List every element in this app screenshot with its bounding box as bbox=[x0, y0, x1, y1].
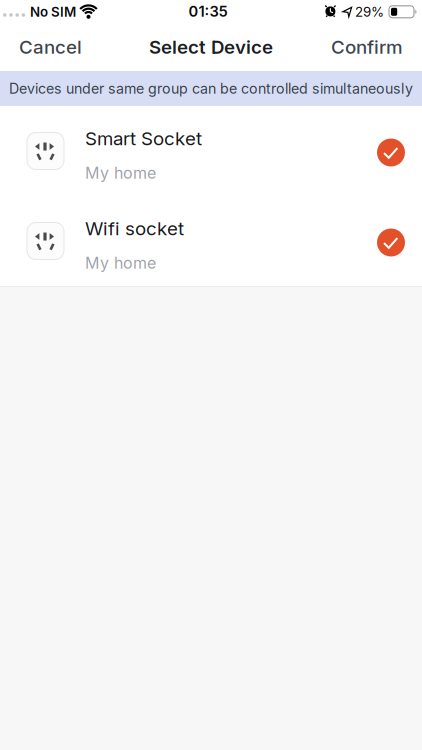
staticText: Select Device bbox=[149, 36, 273, 58]
staticText: Confirm bbox=[331, 36, 403, 58]
staticText: 29% bbox=[355, 4, 384, 20]
button[interactable]: Smart Socket bbox=[0, 106, 422, 196]
button[interactable]: Confirm bbox=[331, 36, 403, 58]
button[interactable]: Wifi socket bbox=[0, 196, 422, 286]
staticText: Wifi socket bbox=[85, 218, 184, 240]
staticText: Devices under same group can be controll… bbox=[9, 80, 413, 97]
staticText: 01:35 bbox=[188, 3, 227, 20]
staticText: No SIM bbox=[30, 4, 76, 20]
button[interactable]: Cancel bbox=[19, 36, 82, 58]
staticText: My home bbox=[85, 164, 156, 182]
staticText: Smart Socket bbox=[85, 128, 202, 150]
staticText: Cancel bbox=[19, 36, 82, 58]
staticText: My home bbox=[85, 254, 156, 272]
